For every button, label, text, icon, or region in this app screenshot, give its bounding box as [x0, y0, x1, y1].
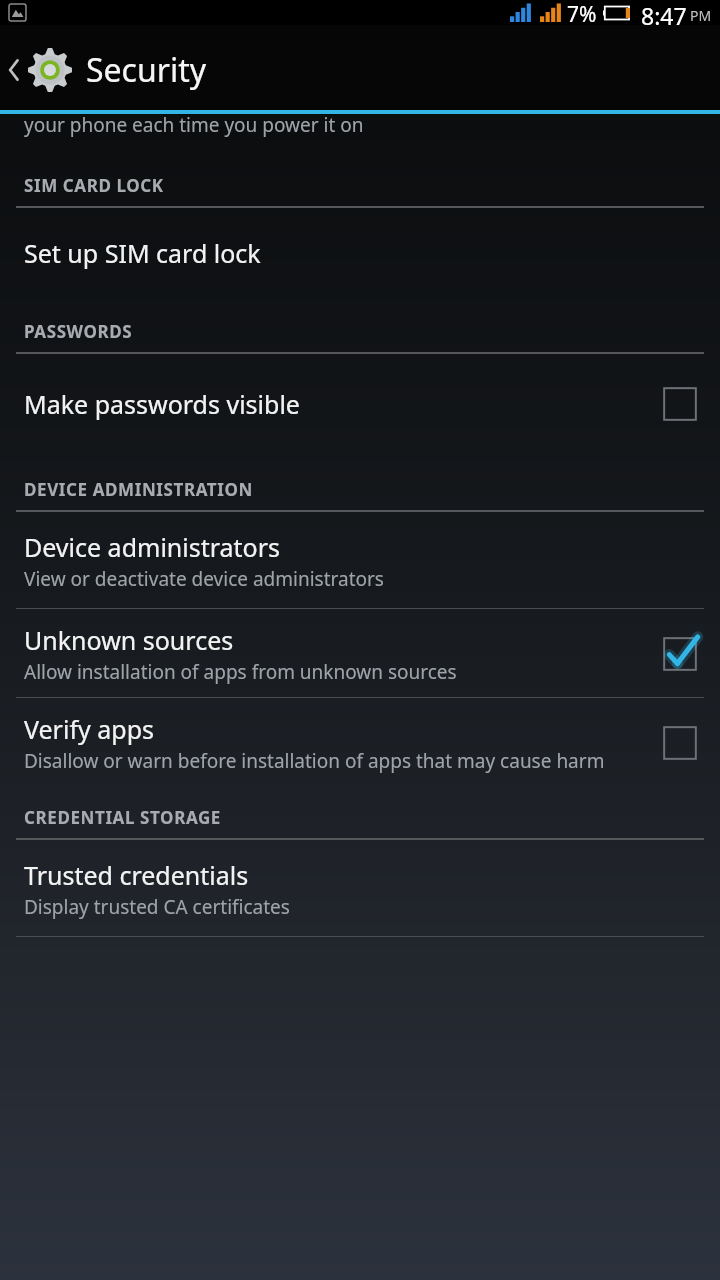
staticText: Unknown sources — [24, 623, 234, 657]
button[interactable]: Verify apps — [0, 698, 720, 786]
button[interactable]: Unknown sources — [0, 609, 720, 697]
button[interactable]: Unchecked — [652, 715, 708, 771]
staticText: CREDENTIAL STORAGE — [24, 806, 221, 829]
staticText: Trusted credentials — [24, 858, 249, 892]
staticText: Disallow or warn before installation of … — [24, 748, 605, 774]
staticText: Set up SIM card lock — [24, 236, 261, 270]
button[interactable]: Device administrators — [0, 512, 720, 608]
button[interactable]: Set up SIM card lock — [0, 208, 720, 300]
staticText: Allow installation of apps from unknown … — [24, 659, 457, 685]
button[interactable]: Navigate up, Security — [0, 42, 219, 98]
staticText: Make passwords visible — [24, 387, 300, 421]
staticText: Security — [86, 48, 207, 92]
staticText: your phone each time you power it on — [24, 112, 364, 138]
button[interactable]: Checked — [652, 626, 708, 682]
button[interactable]: your phone each time you power it on — [0, 114, 720, 154]
button[interactable]: Trusted credentials — [0, 840, 720, 936]
staticText: Device administrators — [24, 530, 281, 564]
staticText: Display trusted CA certificates — [24, 894, 290, 920]
staticText: Verify apps — [24, 712, 154, 746]
button[interactable]: Unchecked — [652, 376, 708, 432]
staticText: SIM CARD LOCK — [24, 174, 164, 197]
staticText: 7% — [567, 0, 597, 25]
button[interactable]: Make passwords visible — [0, 354, 720, 458]
staticText: 8:47 — [641, 0, 687, 25]
staticText: DEVICE ADMINISTRATION — [24, 478, 253, 501]
staticText: PASSWORDS — [24, 320, 133, 343]
staticText: PM — [690, 6, 712, 25]
staticText: View or deactivate device administrators — [24, 566, 384, 592]
